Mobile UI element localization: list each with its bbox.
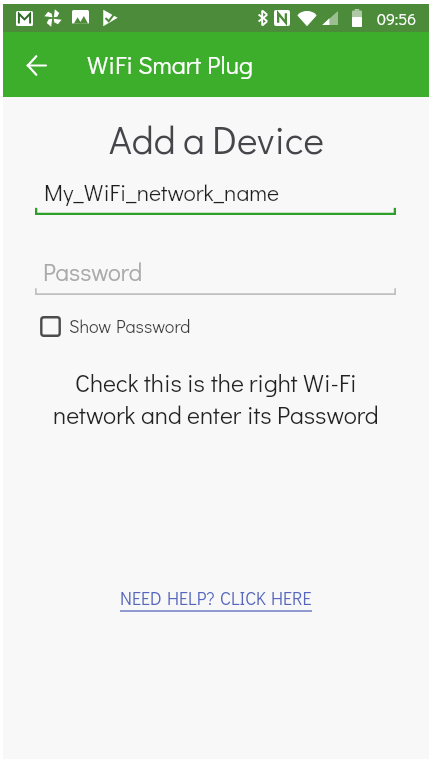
staticText: HERE — [271, 586, 312, 610]
staticText: My_WiFi_network_name — [44, 177, 280, 207]
staticText: HELP? — [167, 586, 215, 610]
staticText: Show — [69, 314, 112, 338]
staticText: Plug — [207, 48, 253, 81]
staticText: this — [144, 366, 182, 398]
button[interactable]: Show — [40, 314, 191, 338]
staticText: a — [183, 113, 205, 164]
staticText: Password — [277, 398, 379, 430]
staticText: Device — [212, 113, 324, 164]
button[interactable]: Back — [14, 43, 58, 87]
staticText: enter — [187, 398, 242, 430]
staticText: NEED — [120, 586, 162, 610]
staticText: 09:56 — [377, 8, 416, 29]
staticText: its — [247, 398, 272, 430]
staticText: Wi-Fi — [303, 366, 357, 398]
staticText: and — [141, 398, 182, 430]
staticText: the — [211, 366, 244, 398]
staticText: Check — [75, 366, 139, 398]
staticText: Password — [43, 256, 143, 287]
staticText: right — [249, 366, 298, 398]
staticText: Add — [109, 113, 176, 164]
staticText: is — [187, 366, 206, 398]
staticText: CLICK — [220, 586, 266, 610]
staticText: Smart — [138, 48, 202, 81]
staticText: WiFi — [87, 48, 133, 81]
button[interactable]: NEED — [120, 586, 312, 613]
staticText: Password — [116, 314, 191, 338]
staticText: network — [53, 398, 136, 430]
